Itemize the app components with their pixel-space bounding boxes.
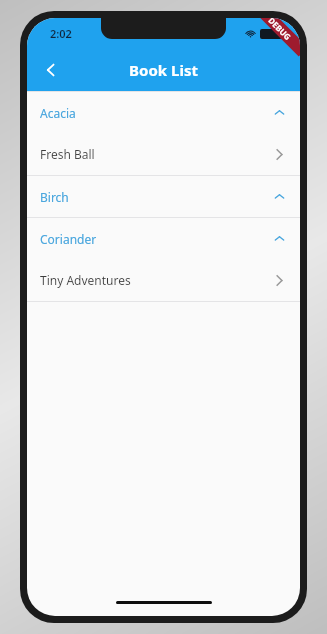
staticText: Coriander <box>40 231 273 247</box>
button[interactable]: Fresh Ball <box>27 133 300 175</box>
staticText: Fresh Ball <box>40 146 272 162</box>
button[interactable]: Coriander <box>27 218 300 259</box>
button[interactable]: Back <box>33 52 69 88</box>
button[interactable]: Tiny Adventures <box>27 259 300 301</box>
staticText: Birch <box>40 189 273 205</box>
staticText: Book List <box>129 60 198 80</box>
staticText: DEBUG <box>266 18 294 42</box>
staticText: Tiny Adventures <box>40 272 272 288</box>
staticText: 2:02 <box>50 26 72 41</box>
button[interactable]: Birch <box>27 176 300 217</box>
button[interactable]: Acacia <box>27 92 300 133</box>
staticText: Acacia <box>40 105 273 121</box>
